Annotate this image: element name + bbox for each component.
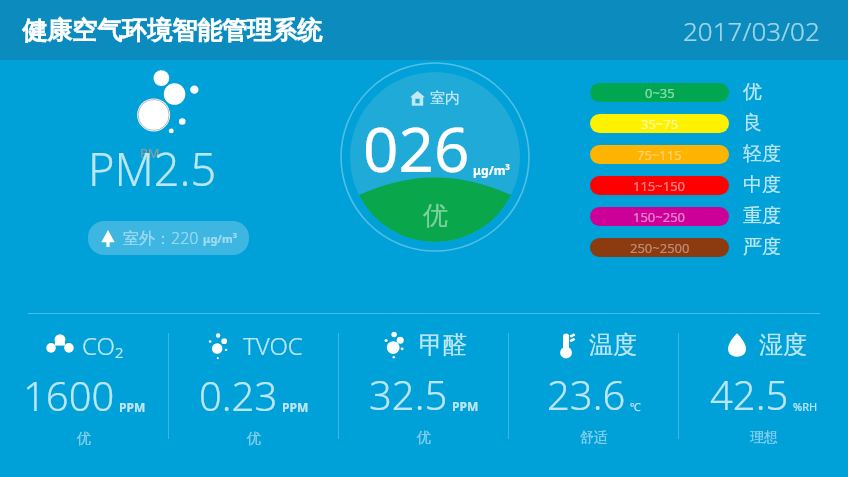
button[interactable]: Bubbles [169,315,338,477]
staticText: 良 [743,111,762,135]
staticText: TVOC [243,329,303,362]
button[interactable]: Temperature [509,315,678,477]
staticText: 中度 [743,173,781,197]
staticText: 23.6 [547,367,626,421]
staticText: PPM [452,398,479,414]
button[interactable]: 0~35 [590,80,762,104]
other: Temperature [551,329,583,361]
staticText: PPM [119,399,146,415]
button[interactable]: 150~250 [590,204,781,228]
staticText: 舒适 [580,429,608,447]
staticText: 优 [247,430,261,448]
other: Bubbles [205,330,237,362]
staticText: 室外：220 [123,227,203,249]
button[interactable]: 35~75 [590,111,762,135]
staticText: 35~75 [641,115,679,133]
staticText: 重度 [743,204,781,228]
staticText: 75~115 [637,146,682,164]
button[interactable]: 115~150 [590,173,781,197]
staticText: 优 [423,200,448,231]
staticText: ℃ [630,399,641,414]
staticText: PPM [282,399,309,415]
staticText: 轻度 [743,142,781,166]
other: Humidity [721,329,753,361]
staticText: 026 [363,106,470,190]
button[interactable]: CO2 [0,315,168,477]
staticText: 优 [743,80,762,104]
staticText: 室内 [430,89,460,108]
button[interactable]: 室外：220 [88,221,249,255]
staticText: 1600 [23,368,115,422]
staticText: %RH [793,399,818,414]
staticText: 0~35 [645,84,675,102]
staticText: 湿度 [759,330,807,360]
other: Bubbles [381,329,413,361]
button[interactable]: 75~115 [590,142,781,166]
staticText: 严度 [743,235,781,259]
staticText: 250~2500 [630,239,690,257]
staticText: 115~150 [633,177,686,195]
staticText: 42.5 [710,367,789,421]
staticText: 理想 [750,429,778,447]
staticText: 32.5 [369,367,448,421]
staticText: 150~250 [633,208,686,226]
staticText: 健康空气环境智能管理系统 [22,15,322,46]
button[interactable]: 250~2500 [590,235,781,259]
staticText: 2017/03/02 [683,13,820,48]
button[interactable]: 室内 [340,62,530,252]
staticText: 优 [417,429,431,447]
staticText: μg/m³ [203,231,237,246]
staticText: μg/m³ [473,162,510,178]
button[interactable]: Bubbles [339,315,508,477]
staticText: PM2.5 [88,138,217,199]
staticText: 0.23 [199,368,278,422]
staticText: CO₂ [82,329,124,362]
staticText: 温度 [589,330,637,360]
button[interactable]: Humidity [679,315,848,477]
staticText: 优 [77,430,91,448]
other: CO2 [44,330,76,362]
staticText: 甲醛 [419,330,467,360]
staticText: PM [140,144,160,162]
